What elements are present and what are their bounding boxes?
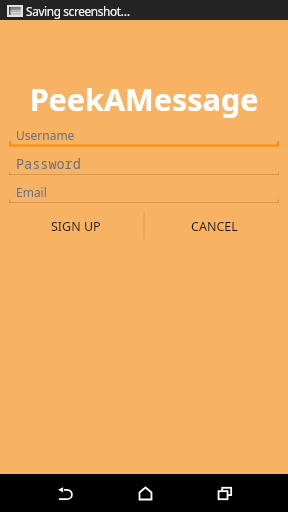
button[interactable]: CANCEL xyxy=(145,210,283,242)
button[interactable]: SIGN UP xyxy=(7,210,145,242)
staticText: Username xyxy=(16,127,75,143)
staticText: Password xyxy=(16,155,81,173)
staticText: SIGN UP xyxy=(51,218,101,235)
button[interactable]: Email xyxy=(0,175,288,203)
staticText: Email xyxy=(16,184,47,200)
button[interactable]: Username xyxy=(0,118,288,146)
staticText: PeekAMessage xyxy=(0,78,288,118)
button[interactable]: Password xyxy=(0,147,288,175)
button[interactable]: Back xyxy=(35,474,95,512)
button[interactable]: Home xyxy=(115,474,175,512)
staticText: CANCEL xyxy=(191,218,238,235)
button[interactable]: Recent apps xyxy=(195,474,255,512)
staticText: Saving screenshot… xyxy=(26,3,130,19)
